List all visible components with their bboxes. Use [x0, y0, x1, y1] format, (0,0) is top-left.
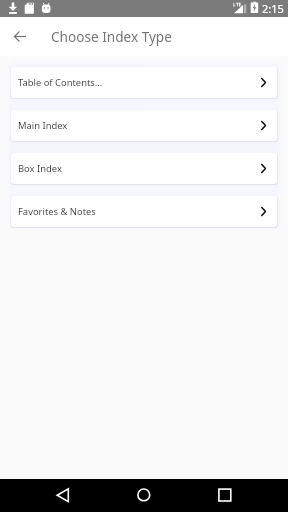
button[interactable]: Main Index	[11, 110, 277, 141]
staticText: Choose Index Type	[51, 27, 172, 46]
staticText: Favorites & Notes	[18, 205, 96, 218]
staticText: 2:15	[262, 1, 284, 16]
button[interactable]: Box Index	[11, 153, 277, 184]
staticText: Main Index	[18, 119, 68, 132]
staticText: Table of Contents...	[18, 76, 103, 89]
button[interactable]: Table of Contents...	[11, 67, 277, 98]
button[interactable]: Home	[120, 479, 144, 512]
button[interactable]: Navigate up	[0, 17, 39, 56]
button[interactable]: Recent apps	[201, 479, 225, 512]
staticText: Box Index	[18, 162, 62, 175]
button[interactable]: Favorites & Notes	[11, 196, 277, 227]
button[interactable]: Back	[39, 479, 63, 512]
